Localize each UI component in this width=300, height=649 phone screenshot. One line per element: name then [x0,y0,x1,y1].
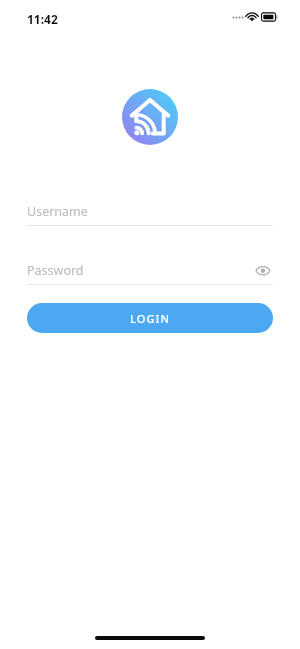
button[interactable]: Show password [253,260,273,280]
staticText: Username [27,203,88,220]
staticText: 11:42 [27,11,58,27]
button[interactable]: Password [27,255,273,285]
button[interactable]: Username [27,196,273,226]
staticText: LOGIN [130,311,171,326]
staticText: Password [27,262,84,279]
button[interactable]: LOGIN [27,303,273,333]
